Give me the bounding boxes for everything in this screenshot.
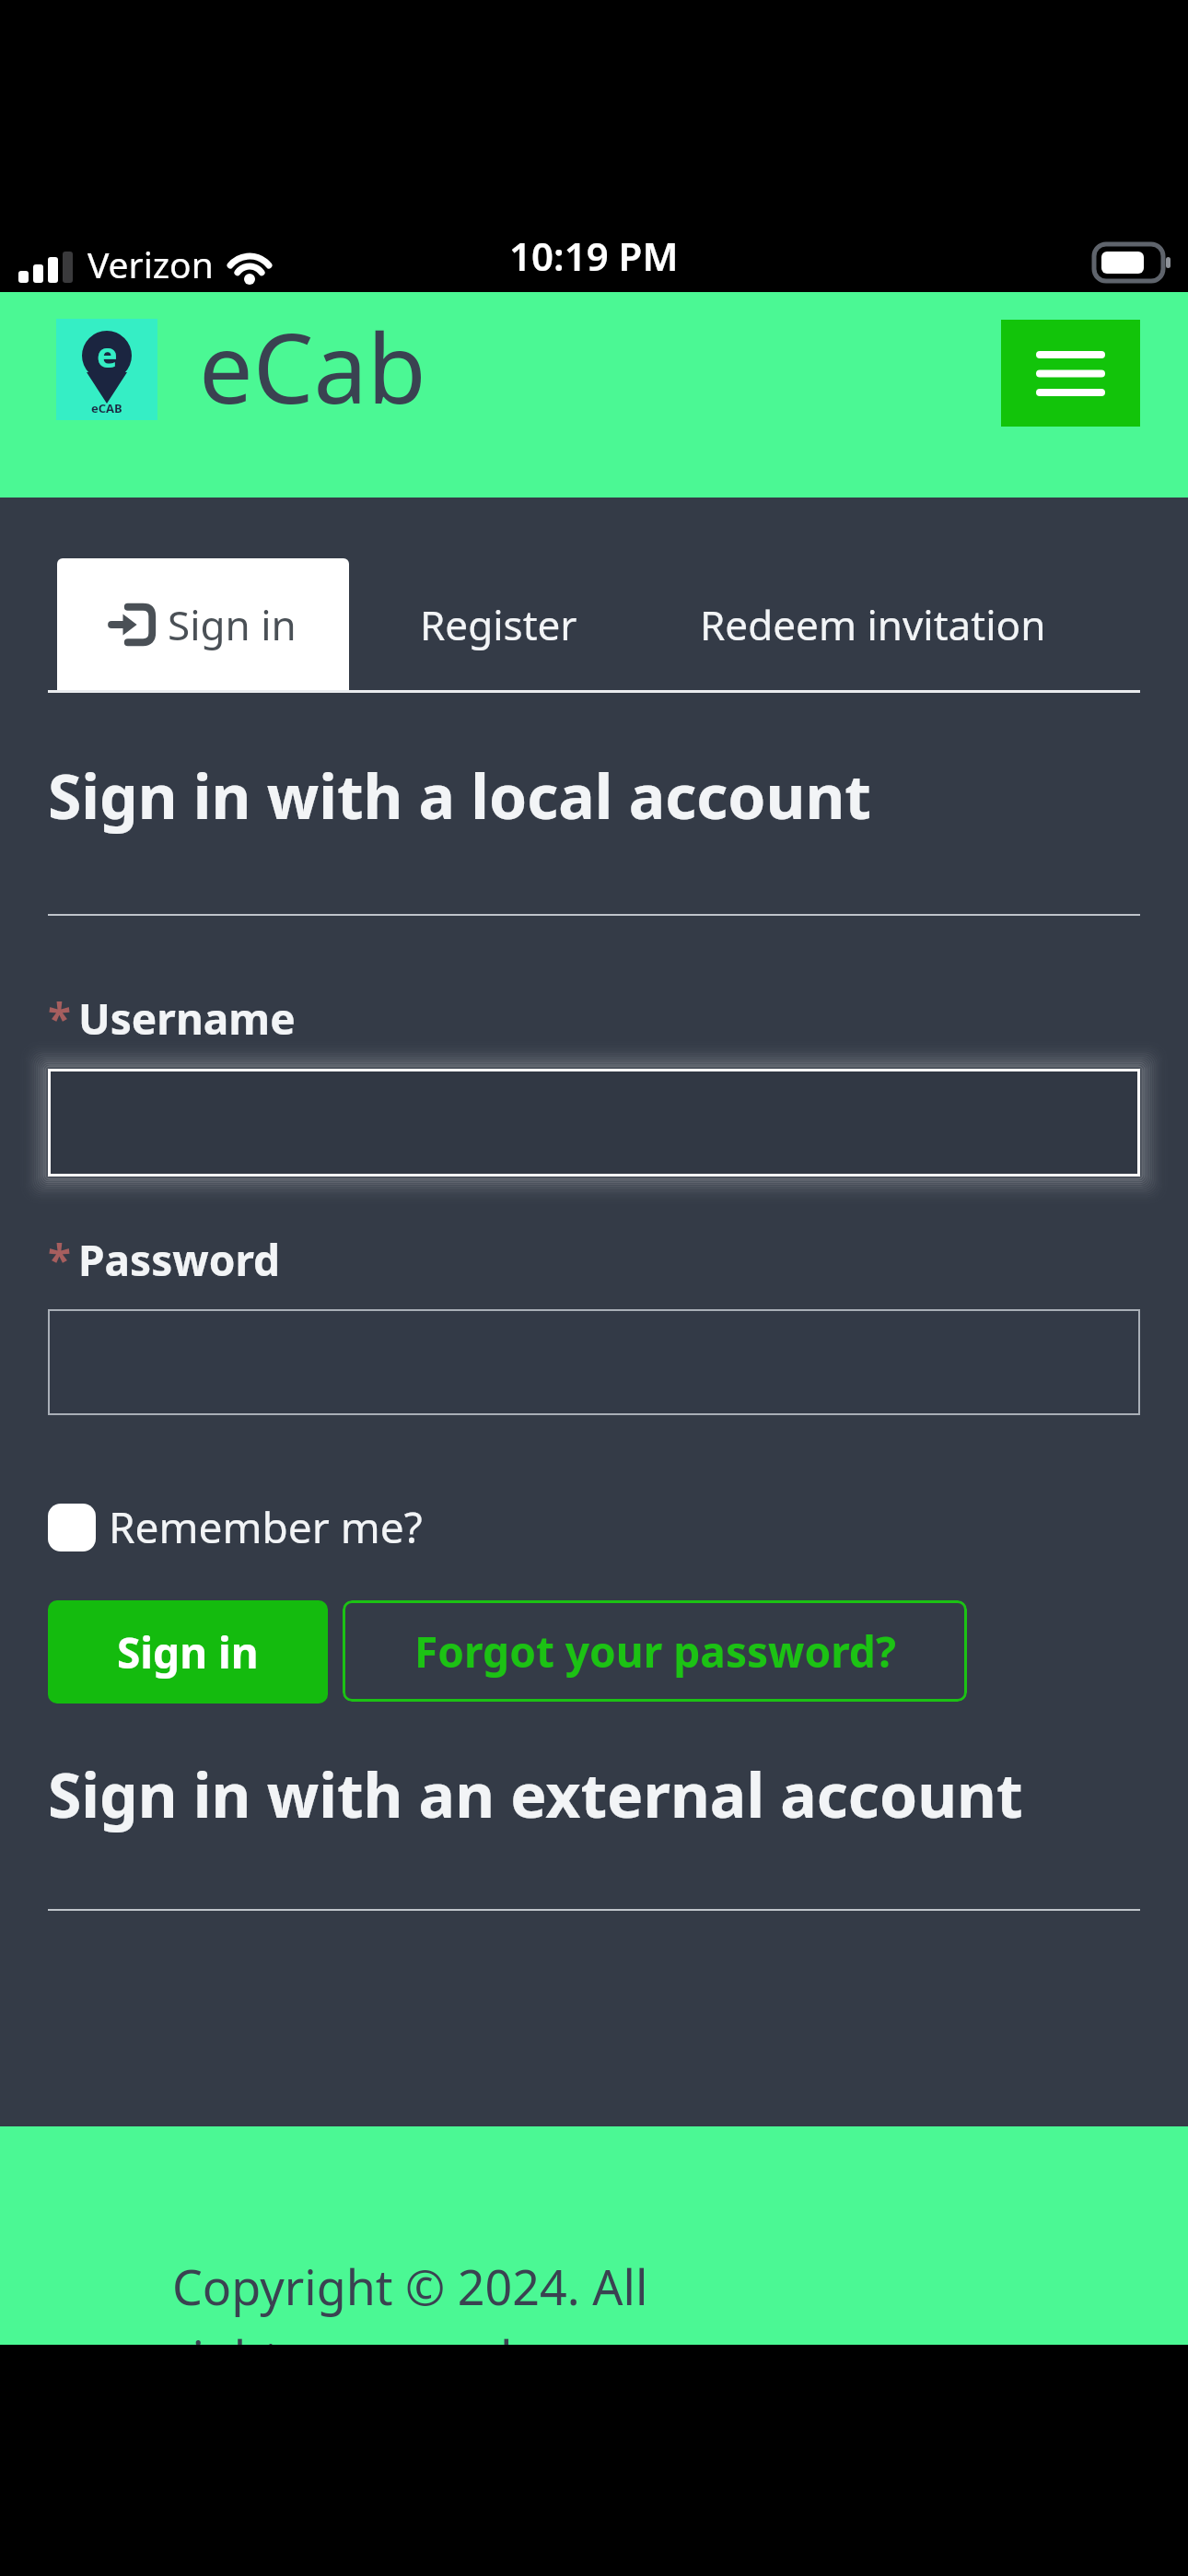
staticText: Copyright © 2024. All [172, 2254, 648, 2319]
staticText: * [48, 989, 71, 1048]
button[interactable]: Sign in [48, 1600, 328, 1704]
staticText: e [97, 330, 118, 378]
staticText: Sign in with a local account [48, 754, 871, 837]
staticText: Forgot your password? [414, 1622, 896, 1680]
staticText: Register [420, 597, 577, 652]
staticText: Sign in with an external account [48, 1752, 1023, 1835]
staticText: Username [78, 989, 296, 1048]
button[interactable] [1001, 320, 1140, 427]
staticText: Sign in [117, 1623, 259, 1681]
button[interactable]: Sign in [57, 558, 349, 690]
staticText: eCab [199, 301, 426, 432]
staticText: rights reserved. [172, 2324, 526, 2345]
staticText: 10:19 PM [509, 229, 679, 282]
staticText: * [48, 1231, 71, 1289]
button[interactable]: Forgot your password? [343, 1600, 967, 1702]
staticText: eCAB [91, 400, 122, 416]
button[interactable] [48, 1309, 1140, 1415]
button[interactable] [48, 1504, 96, 1551]
staticText: Remember me? [109, 1498, 423, 1556]
staticText: Redeem invitation [700, 597, 1046, 652]
staticText: Verizon [87, 240, 214, 288]
staticText: Password [78, 1231, 281, 1289]
staticText: Sign in [168, 597, 297, 652]
button[interactable]: Redeem invitation [700, 558, 1046, 690]
button[interactable]: Register [420, 558, 577, 690]
button[interactable] [48, 1069, 1140, 1177]
